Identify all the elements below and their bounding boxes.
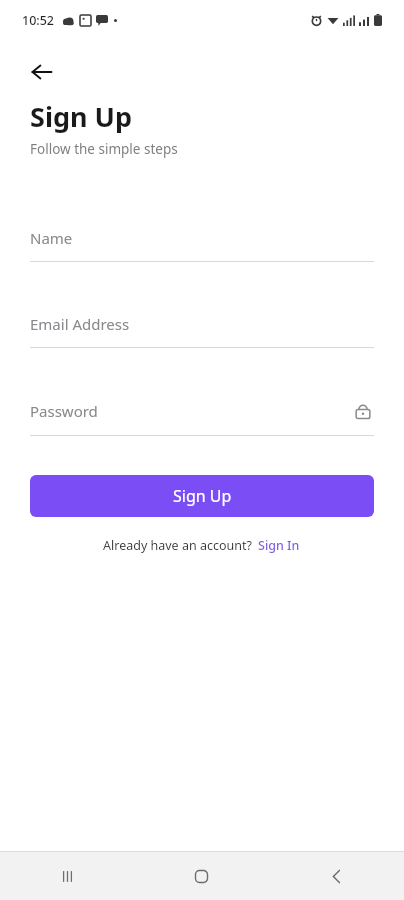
staticText: Follow the simple steps xyxy=(30,140,178,158)
staticText: Sign In xyxy=(258,537,300,554)
button[interactable]: Home xyxy=(134,852,269,900)
staticText: Already have an account? xyxy=(103,537,252,554)
staticText: Password xyxy=(30,401,352,421)
button[interactable]: Back xyxy=(18,48,66,96)
button[interactable]: Sign Up xyxy=(30,475,374,517)
button[interactable]: Password xyxy=(0,400,404,436)
staticText: Email Address xyxy=(30,314,374,334)
button[interactable]: Email Address xyxy=(0,314,404,348)
other: Toggle password visibility xyxy=(352,400,374,422)
button[interactable]: Name xyxy=(0,228,404,262)
staticText: Sign Up xyxy=(173,485,232,507)
button[interactable]: Sign In xyxy=(252,535,302,556)
staticText: Sign Up xyxy=(30,98,133,135)
button[interactable]: Recent apps xyxy=(0,852,134,900)
staticText: Name xyxy=(30,228,374,248)
staticText: 10:52 xyxy=(22,12,55,29)
button[interactable]: Back xyxy=(269,852,404,900)
